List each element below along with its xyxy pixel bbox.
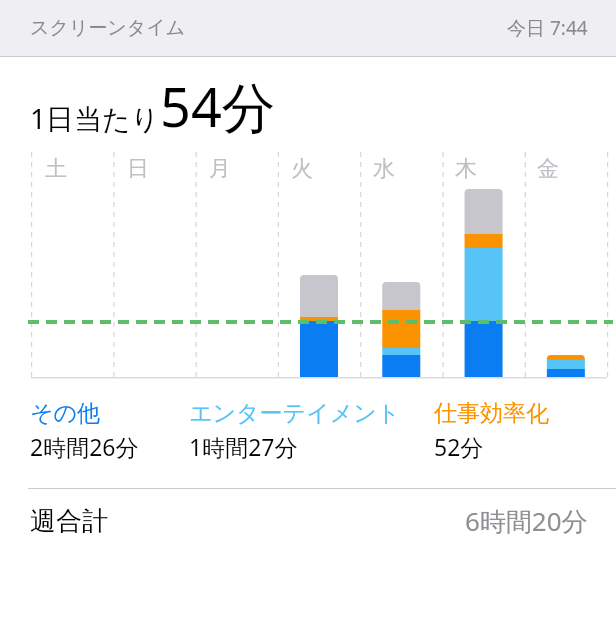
staticText: 水 (373, 155, 395, 183)
staticText: 火 (291, 155, 313, 183)
staticText: スクリーンタイム (30, 16, 186, 40)
staticText: 6時間20分 (465, 503, 588, 539)
staticText: 週合計 (30, 505, 108, 538)
staticText: その他 (30, 399, 101, 428)
staticText: 金 (537, 155, 559, 183)
staticText: 木 (455, 155, 477, 183)
button[interactable]: その他 (30, 399, 189, 462)
button[interactable]: 仕事効率化 (434, 399, 616, 462)
staticText: 日 (127, 155, 149, 183)
staticText: 仕事効率化 (434, 399, 549, 428)
staticText: 54分 (160, 69, 276, 143)
staticText: 今日 7:44 (507, 15, 588, 41)
staticText: 2時間26分 (30, 431, 139, 462)
staticText: 1日当たり (30, 99, 160, 137)
staticText: 土 (45, 155, 67, 183)
staticText: 1時間27分 (189, 431, 298, 462)
staticText: エンターテイメント (189, 399, 401, 428)
button[interactable]: スクリーンタイム (0, 0, 616, 56)
button[interactable]: エンターテイメント (189, 399, 434, 462)
staticText: 月 (209, 155, 231, 183)
staticText: 52分 (434, 431, 484, 462)
button[interactable]: 週合計 (0, 489, 616, 553)
